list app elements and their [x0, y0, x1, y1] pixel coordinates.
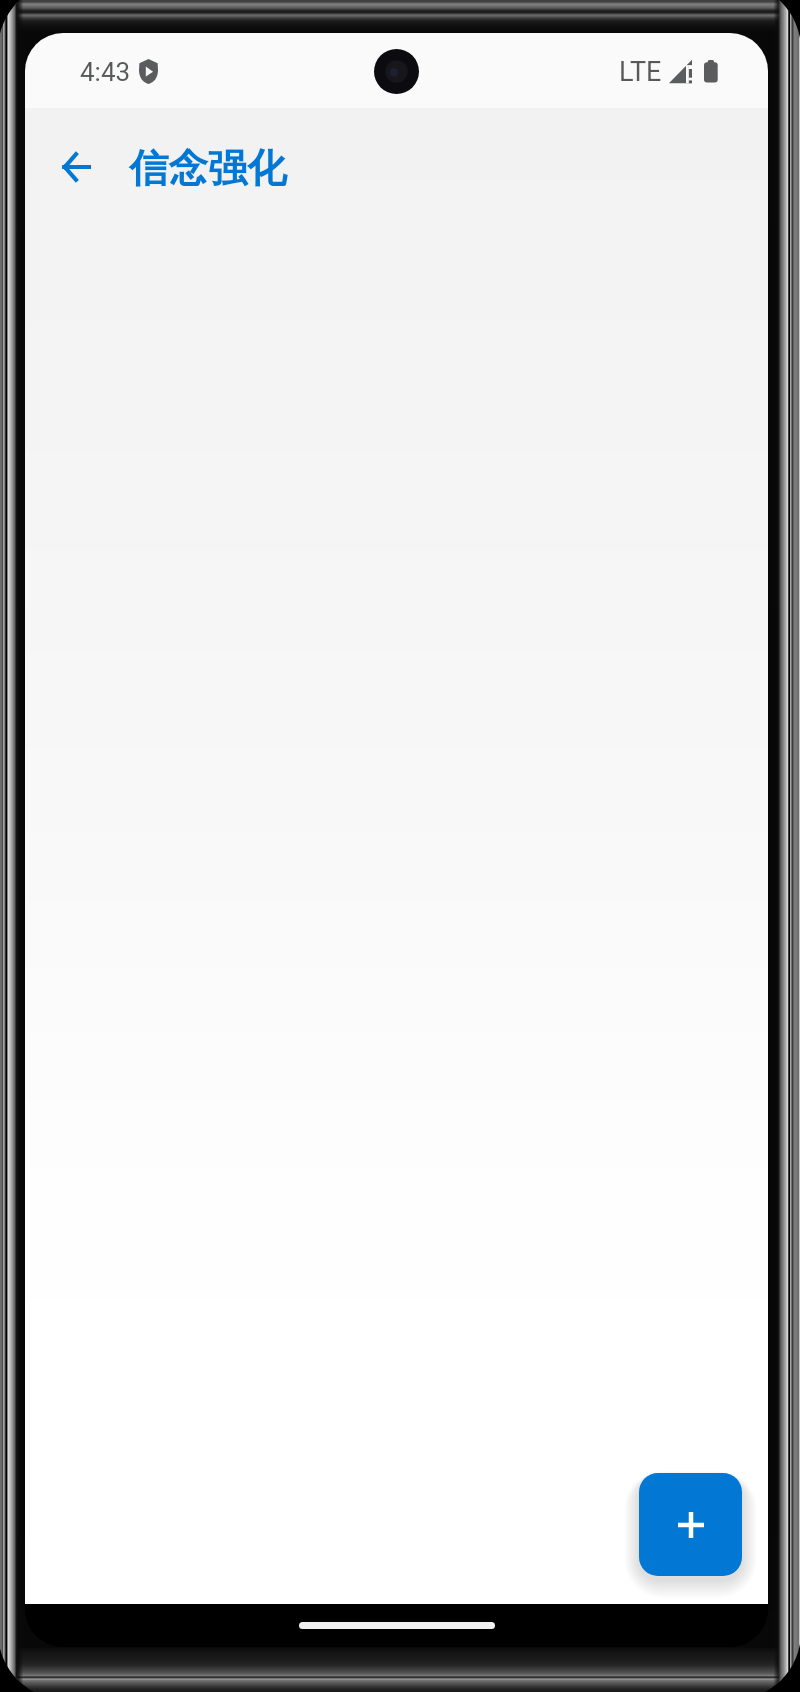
button[interactable]: 信念强化: [129, 139, 287, 199]
staticText: 4:43: [80, 57, 131, 87]
button[interactable]: Add: [639, 1473, 742, 1576]
staticText: LTE: [619, 56, 662, 88]
staticText: 信念强化: [129, 144, 287, 194]
button[interactable]: Back: [43, 134, 108, 199]
